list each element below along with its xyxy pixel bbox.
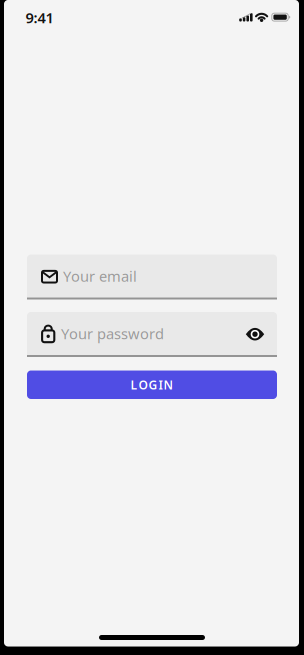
button[interactable] bbox=[245, 325, 265, 341]
button[interactable]: Your email bbox=[27, 254, 277, 299]
staticText: L O G I N bbox=[130, 377, 173, 393]
staticText: 9:41 bbox=[25, 8, 53, 27]
button[interactable]: L O G I N bbox=[27, 370, 277, 399]
staticText: Your password bbox=[61, 324, 164, 343]
button[interactable]: Your password bbox=[27, 312, 277, 357]
staticText: Your email bbox=[63, 266, 137, 286]
